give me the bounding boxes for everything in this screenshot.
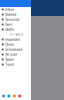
button[interactable]: All mail (0, 52, 31, 57)
staticText: Starred (5, 13, 16, 16)
staticText: Snoozed (5, 18, 19, 21)
staticText: Inbox (5, 8, 14, 11)
button[interactable]: Snoozed (0, 17, 31, 22)
staticText: Scheduled (5, 48, 22, 51)
staticText: All labels (10, 33, 23, 36)
staticText: Drafts (5, 28, 14, 31)
button[interactable]: Spam (0, 57, 31, 62)
button[interactable]: Starred (0, 12, 31, 17)
button[interactable]: Sent (0, 22, 31, 27)
staticText: Trash (5, 63, 14, 66)
button[interactable]: Chats (0, 42, 31, 47)
staticText: Spam (5, 58, 14, 61)
button[interactable]: Inbox (0, 7, 31, 12)
staticText: Important (5, 38, 20, 41)
button[interactable]: Drafts (0, 27, 31, 32)
staticText: Chats (5, 43, 14, 46)
button[interactable]: Important (0, 37, 31, 42)
staticText: All mail (5, 53, 17, 56)
staticText: Sent (5, 23, 12, 26)
button[interactable]: Trash (0, 62, 31, 67)
button[interactable]: Scheduled (0, 47, 31, 52)
